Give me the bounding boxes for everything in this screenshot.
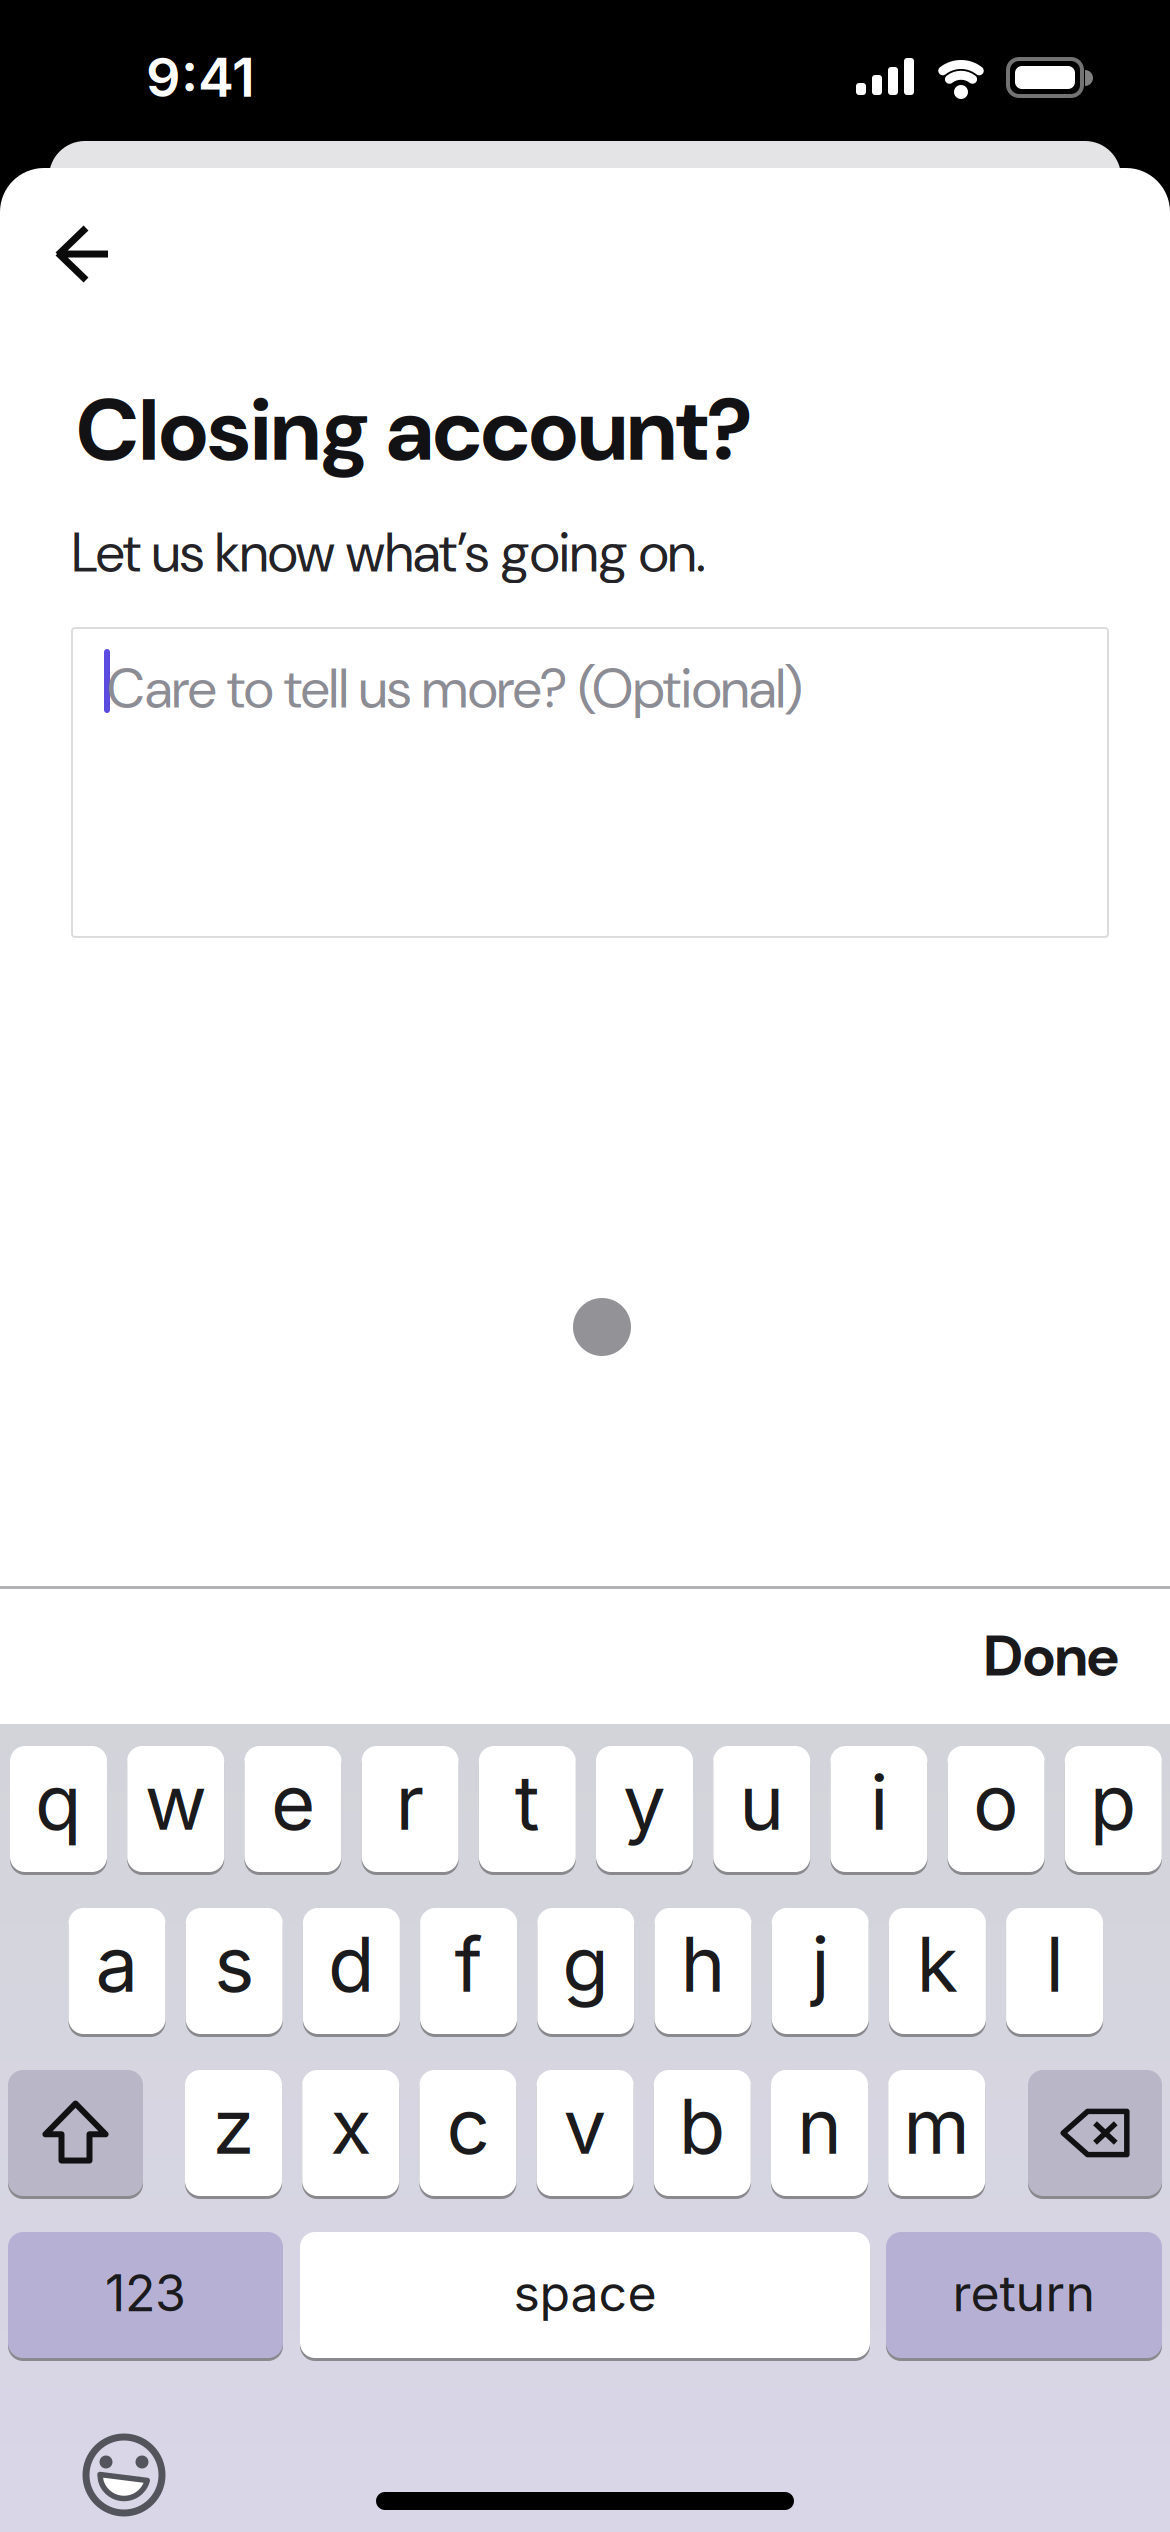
button[interactable]: o — [948, 1746, 1045, 1872]
button[interactable]: q — [10, 1746, 107, 1872]
button[interactable]: 123 — [8, 2232, 283, 2358]
staticText: Closing account? — [76, 373, 753, 487]
button[interactable]: s — [186, 1908, 283, 2034]
button[interactable]: p — [1065, 1746, 1162, 1872]
staticText: Care to tell us more? (Optional) — [107, 654, 803, 724]
button[interactable]: x — [302, 2070, 399, 2196]
staticText: v — [564, 2080, 607, 2172]
button[interactable]: a — [68, 1908, 165, 2034]
button[interactable]: c — [419, 2070, 516, 2196]
staticText: f — [455, 1918, 483, 2010]
button[interactable]: z — [185, 2070, 282, 2196]
button[interactable]: t — [479, 1746, 576, 1872]
button[interactable]: k — [889, 1908, 986, 2034]
button[interactable]: Shift — [8, 2070, 143, 2196]
button[interactable]: g — [537, 1908, 634, 2034]
staticText: x — [330, 2080, 371, 2172]
staticText: q — [35, 1756, 82, 1848]
staticText: p — [1090, 1756, 1137, 1848]
staticText: e — [271, 1756, 315, 1848]
staticText: 123 — [105, 2263, 186, 2323]
staticText: w — [145, 1756, 207, 1848]
button[interactable]: h — [654, 1908, 751, 2034]
staticText: return — [952, 2263, 1095, 2323]
button[interactable]: space — [300, 2232, 870, 2358]
staticText: b — [679, 2080, 726, 2172]
button[interactable]: b — [654, 2070, 751, 2196]
button[interactable]: return — [886, 2232, 1162, 2358]
button[interactable]: u — [713, 1746, 810, 1872]
staticText: 9:41 — [146, 44, 255, 110]
button[interactable]: y — [596, 1746, 693, 1872]
staticText: s — [214, 1918, 254, 2010]
staticText: h — [680, 1918, 725, 2010]
staticText: j — [811, 1918, 829, 2010]
staticText: n — [797, 2080, 842, 2172]
button[interactable]: i — [830, 1746, 927, 1872]
staticText: d — [328, 1918, 375, 2010]
staticText: space — [513, 2263, 656, 2323]
staticText: r — [396, 1756, 425, 1848]
staticText: t — [515, 1756, 540, 1848]
staticText: y — [623, 1756, 666, 1848]
button[interactable]: Emoji — [82, 2433, 166, 2517]
button[interactable]: Done — [859, 1588, 1119, 1723]
button[interactable]: Back — [55, 225, 111, 283]
button[interactable]: n — [771, 2070, 868, 2196]
button[interactable]: e — [244, 1746, 341, 1872]
button[interactable]: d — [303, 1908, 400, 2034]
staticText: l — [1046, 1918, 1064, 2010]
staticText: m — [903, 2080, 970, 2172]
staticText: Let us know what’s going on. — [72, 518, 706, 588]
button[interactable]: Delete — [1028, 2070, 1162, 2196]
button[interactable]: w — [127, 1746, 224, 1872]
button[interactable]: Care to tell us more? (Optional) — [72, 628, 1108, 937]
button[interactable]: v — [537, 2070, 634, 2196]
button[interactable]: l — [1006, 1908, 1103, 2034]
staticText: z — [212, 2080, 254, 2172]
staticText: k — [916, 1918, 958, 2010]
staticText: g — [562, 1918, 609, 2010]
staticText: i — [870, 1756, 888, 1848]
button[interactable]: m — [888, 2070, 985, 2196]
staticText: Done — [984, 1619, 1119, 1693]
staticText: o — [973, 1756, 1019, 1848]
staticText: a — [95, 1918, 138, 2010]
button[interactable]: j — [772, 1908, 869, 2034]
staticText: c — [446, 2080, 489, 2172]
staticText: u — [739, 1756, 784, 1848]
button[interactable]: r — [362, 1746, 459, 1872]
button[interactable]: f — [420, 1908, 517, 2034]
